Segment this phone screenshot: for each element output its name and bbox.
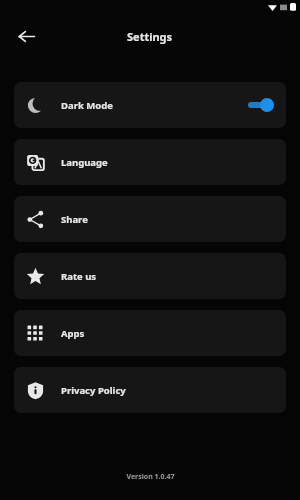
staticText: Apps — [61, 327, 85, 340]
button[interactable]: Back — [8, 18, 44, 54]
button[interactable]: Language — [14, 139, 286, 185]
button[interactable]: Share — [14, 196, 286, 242]
button[interactable]: Apps — [14, 310, 286, 356]
staticText: Language — [61, 156, 108, 169]
button[interactable]: Dark Mode — [14, 82, 286, 128]
button[interactable]: Privacy Policy — [14, 367, 286, 413]
staticText: Settings — [127, 29, 173, 44]
button[interactable]: Rate us — [14, 253, 286, 299]
staticText: Share — [61, 213, 88, 226]
staticText: Privacy Policy — [61, 384, 126, 397]
staticText: Version 1.0.47 — [126, 472, 175, 482]
staticText: Rate us — [61, 270, 97, 283]
button[interactable]: Dark Mode toggle — [248, 98, 274, 112]
staticText: Dark Mode — [61, 99, 113, 112]
